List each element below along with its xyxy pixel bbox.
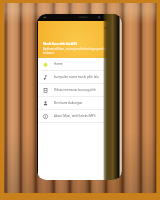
staticText: kumpulan suara musik pilih lalu [54, 75, 99, 79]
staticText: Rilisasi memutar burung pilih [54, 88, 96, 92]
button[interactable]: Home [38, 58, 119, 70]
button[interactable]: Rilisasi memutar burung pilih [38, 84, 119, 96]
button[interactable]: Beri kami dukungan [38, 97, 119, 109]
button[interactable]: kumpulan suara musik pilih lalu [38, 71, 119, 83]
staticText: Aplikasi pilihan, suara jernih dan lagu … [43, 47, 108, 55]
staticText: Beri kami dukungan [54, 101, 83, 105]
button[interactable]: Share [104, 25, 110, 31]
staticText: About Musi, oleh Koleksi MP3 [54, 114, 96, 118]
staticText: Home [54, 62, 63, 66]
staticText: Musik Kucu oleh lalu MP3 [43, 42, 78, 46]
button[interactable]: About Musi, oleh Koleksi MP3 [38, 110, 119, 122]
